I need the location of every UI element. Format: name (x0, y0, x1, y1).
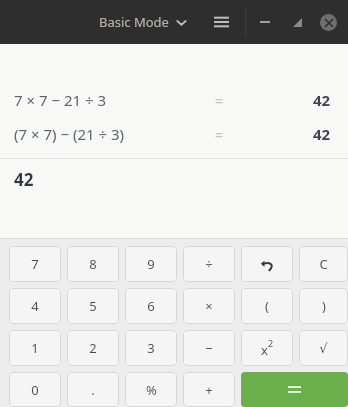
staticText: 5 (89, 297, 97, 315)
button[interactable]: 5 (67, 288, 119, 324)
button[interactable]: 3 (125, 330, 177, 366)
staticText: 1 (31, 339, 39, 357)
staticText: 7 (31, 255, 39, 273)
staticText: = (215, 91, 224, 110)
button[interactable]: 7 (9, 246, 61, 282)
button[interactable]: 8 (67, 246, 119, 282)
staticText: 3 (147, 339, 155, 357)
button[interactable]: (7 × 7) − (21 ÷ 3) (0, 123, 348, 145)
staticText: 9 (147, 255, 155, 273)
staticText: 6 (147, 297, 155, 315)
staticText: 42 (14, 168, 34, 191)
button[interactable]: Undo (241, 246, 293, 282)
staticText: ) (322, 297, 326, 315)
staticText: ÷ (205, 255, 213, 273)
button[interactable]: Minimize (252, 9, 278, 35)
button[interactable]: % (125, 372, 177, 407)
button[interactable]: 9 (125, 246, 177, 282)
button[interactable]: 0 (9, 372, 61, 407)
button[interactable]: 1 (9, 330, 61, 366)
staticText: + (205, 381, 213, 399)
button[interactable]: ) (299, 288, 348, 324)
staticText: × (205, 297, 213, 315)
staticText: C (319, 255, 328, 273)
staticText: = (215, 125, 224, 144)
staticText: . (91, 381, 95, 399)
button[interactable]: C (299, 246, 348, 282)
staticText: (7 × 7) − (21 ÷ 3) (14, 124, 125, 144)
button[interactable]: × (183, 288, 235, 324)
staticText: √ (319, 341, 328, 356)
button[interactable]: + (183, 372, 235, 407)
staticText: 0 (31, 381, 39, 399)
button[interactable]: 4 (9, 288, 61, 324)
staticText: 8 (89, 255, 97, 273)
staticText: ( (265, 297, 269, 315)
staticText: 2 (89, 339, 97, 357)
button[interactable]: Menu (208, 9, 234, 35)
button[interactable]: . (67, 372, 119, 407)
staticText: − (205, 339, 213, 357)
staticText: 4 (31, 297, 39, 315)
button[interactable]: ÷ (183, 246, 235, 282)
staticText: Basic Mode (99, 13, 169, 31)
staticText: % (146, 381, 157, 399)
button[interactable]: 2 (67, 330, 119, 366)
button[interactable]: 6 (125, 288, 177, 324)
button[interactable]: ( (241, 288, 293, 324)
button[interactable]: Close (317, 11, 339, 33)
button[interactable]: 7 × 7 − 21 ÷ 3 (0, 89, 348, 111)
staticText: 2 (268, 337, 274, 349)
button[interactable]: − (183, 330, 235, 366)
staticText: 42 (313, 124, 331, 144)
staticText: 42 (313, 90, 331, 110)
button[interactable]: Square root (299, 330, 348, 366)
staticText: 7 × 7 − 21 ÷ 3 (14, 90, 107, 110)
button[interactable]: Maximize (284, 9, 310, 35)
button[interactable] (241, 372, 348, 407)
staticText: x (261, 341, 268, 359)
button[interactable]: Square (241, 330, 293, 366)
button[interactable]: Basic Mode (99, 13, 187, 31)
